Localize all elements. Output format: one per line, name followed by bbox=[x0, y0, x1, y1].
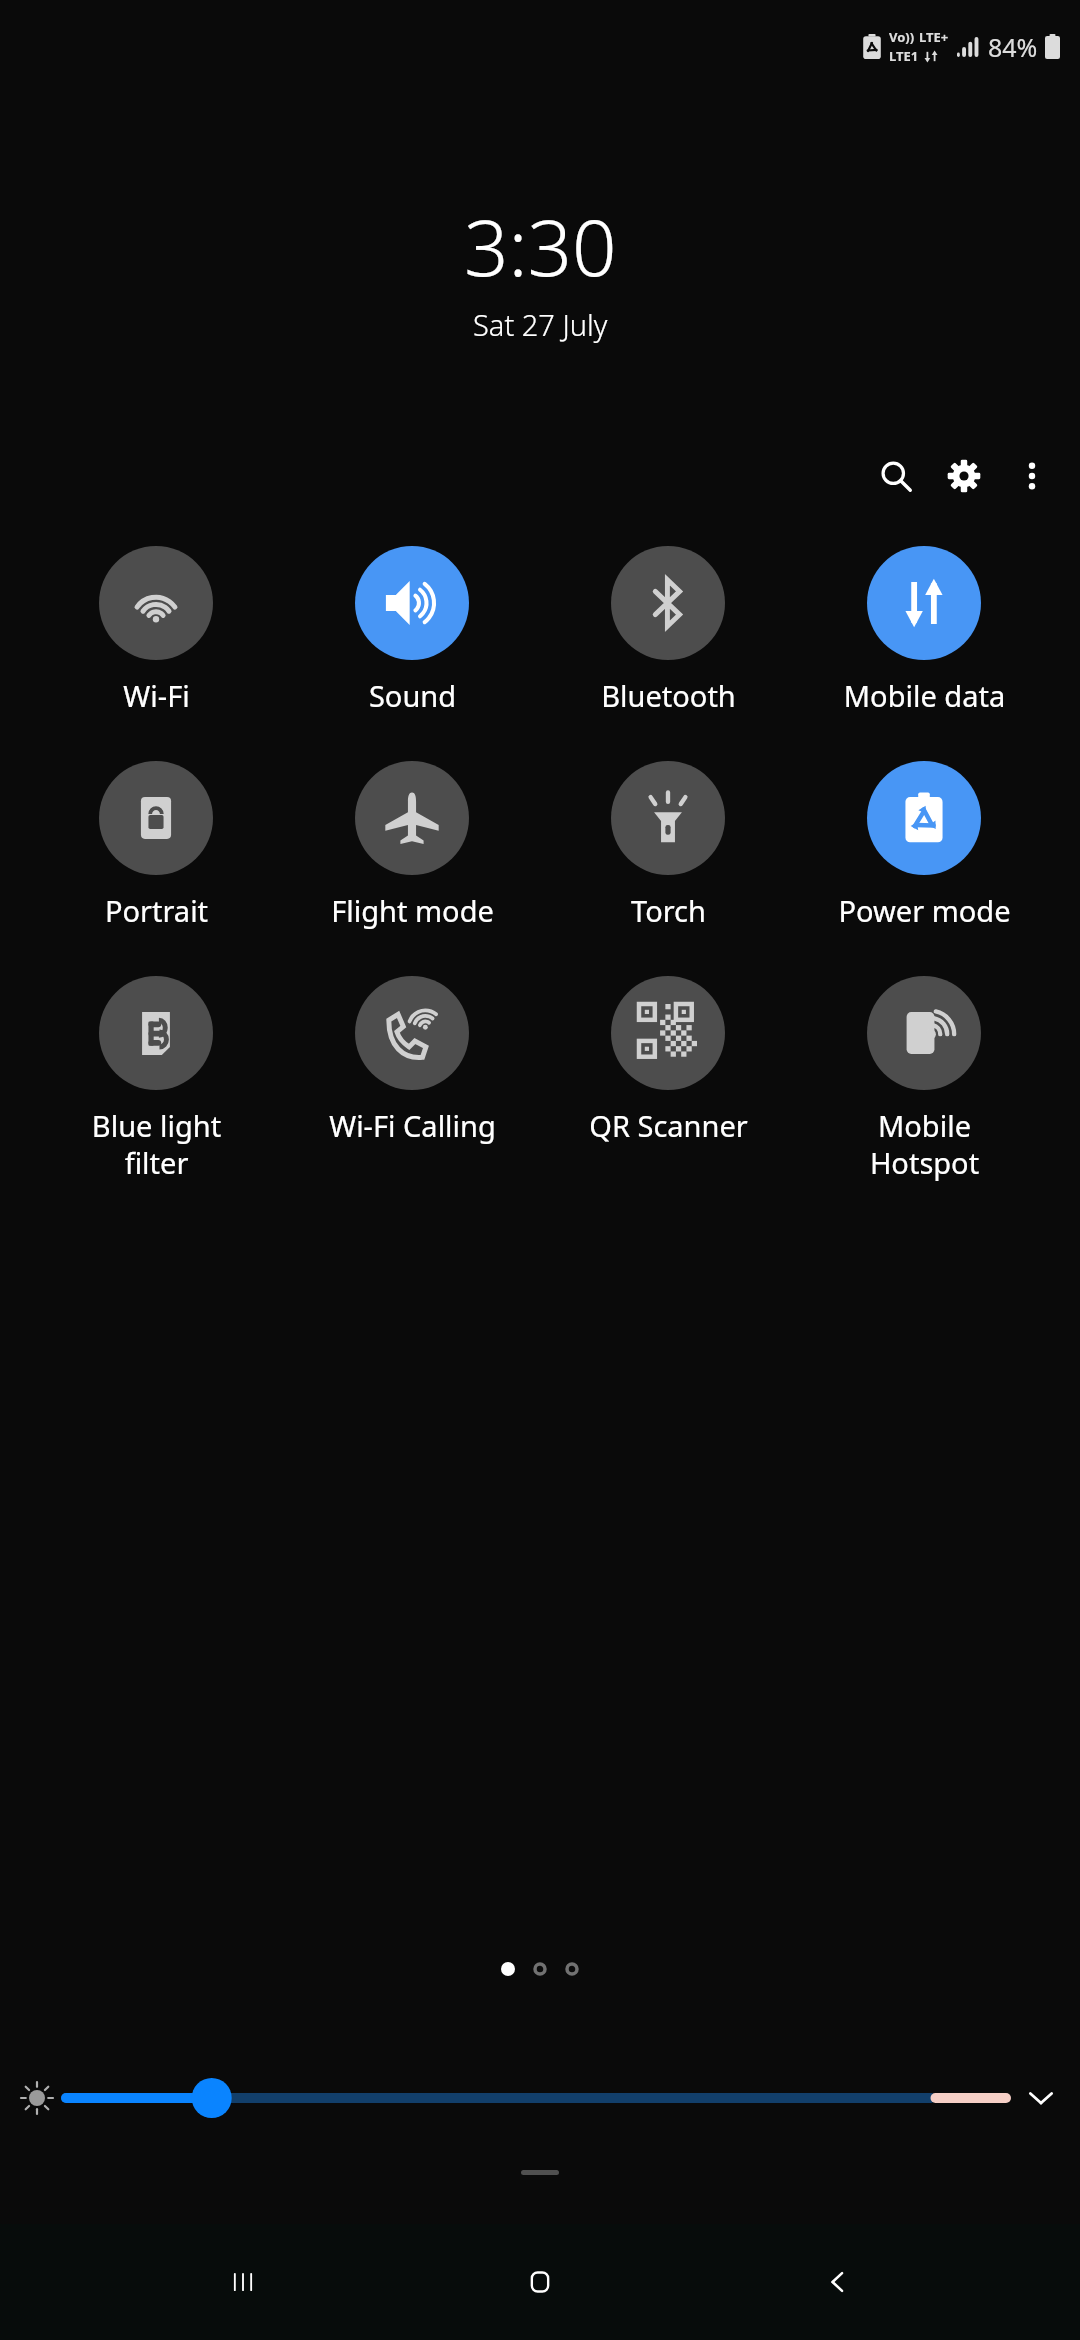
staticText: LTE+ bbox=[919, 28, 949, 46]
button[interactable]: Mobile Hotspot bbox=[824, 976, 1024, 1183]
staticText: QR Scanner bbox=[581, 1106, 756, 1145]
button[interactable]: Power mode bbox=[824, 761, 1024, 930]
button[interactable]: Blue light filter bbox=[56, 976, 256, 1183]
button[interactable]: Brightness slider bbox=[66, 2075, 1006, 2121]
staticText: LTE1 bbox=[889, 47, 919, 65]
staticText: 3:30 bbox=[464, 193, 617, 299]
button[interactable]: Home bbox=[485, 2224, 595, 2340]
staticText: Mobile Hotspot bbox=[837, 1106, 1012, 1183]
staticText: Bluetooth bbox=[581, 676, 756, 715]
button[interactable]: Recent apps bbox=[188, 2224, 298, 2340]
button[interactable]: Mobile data bbox=[824, 546, 1024, 715]
staticText: 84% bbox=[988, 30, 1038, 64]
staticText: Flight mode bbox=[325, 891, 500, 930]
staticText: Wi-Fi Calling bbox=[325, 1106, 500, 1145]
button[interactable]: Wi-Fi bbox=[56, 546, 256, 715]
button[interactable]: Back bbox=[783, 2224, 893, 2340]
staticText: Power mode bbox=[837, 891, 1012, 930]
button[interactable]: Portrait bbox=[56, 761, 256, 930]
staticText: Blue light filter bbox=[69, 1106, 244, 1183]
button[interactable]: Expand bbox=[1016, 2073, 1066, 2123]
staticText: Wi-Fi bbox=[69, 676, 244, 715]
button[interactable]: Torch bbox=[568, 761, 768, 930]
staticText: Portrait bbox=[69, 891, 244, 930]
staticText: Mobile data bbox=[837, 676, 1012, 715]
staticText: Sound bbox=[325, 676, 500, 715]
button[interactable]: Search bbox=[862, 442, 930, 510]
button[interactable]: Settings bbox=[930, 442, 998, 510]
button[interactable]: Brightness bbox=[14, 2075, 60, 2121]
staticText: Torch bbox=[581, 891, 756, 930]
button[interactable]: Flight mode bbox=[312, 761, 512, 930]
button[interactable]: QR Scanner bbox=[568, 976, 768, 1145]
staticText: Vo)) bbox=[889, 28, 915, 46]
button[interactable]: Bluetooth bbox=[568, 546, 768, 715]
button[interactable]: Sound bbox=[312, 546, 512, 715]
button[interactable]: More options bbox=[998, 442, 1066, 510]
button[interactable]: Wi-Fi Calling bbox=[312, 976, 512, 1145]
staticText: Sat 27 July bbox=[473, 305, 608, 344]
